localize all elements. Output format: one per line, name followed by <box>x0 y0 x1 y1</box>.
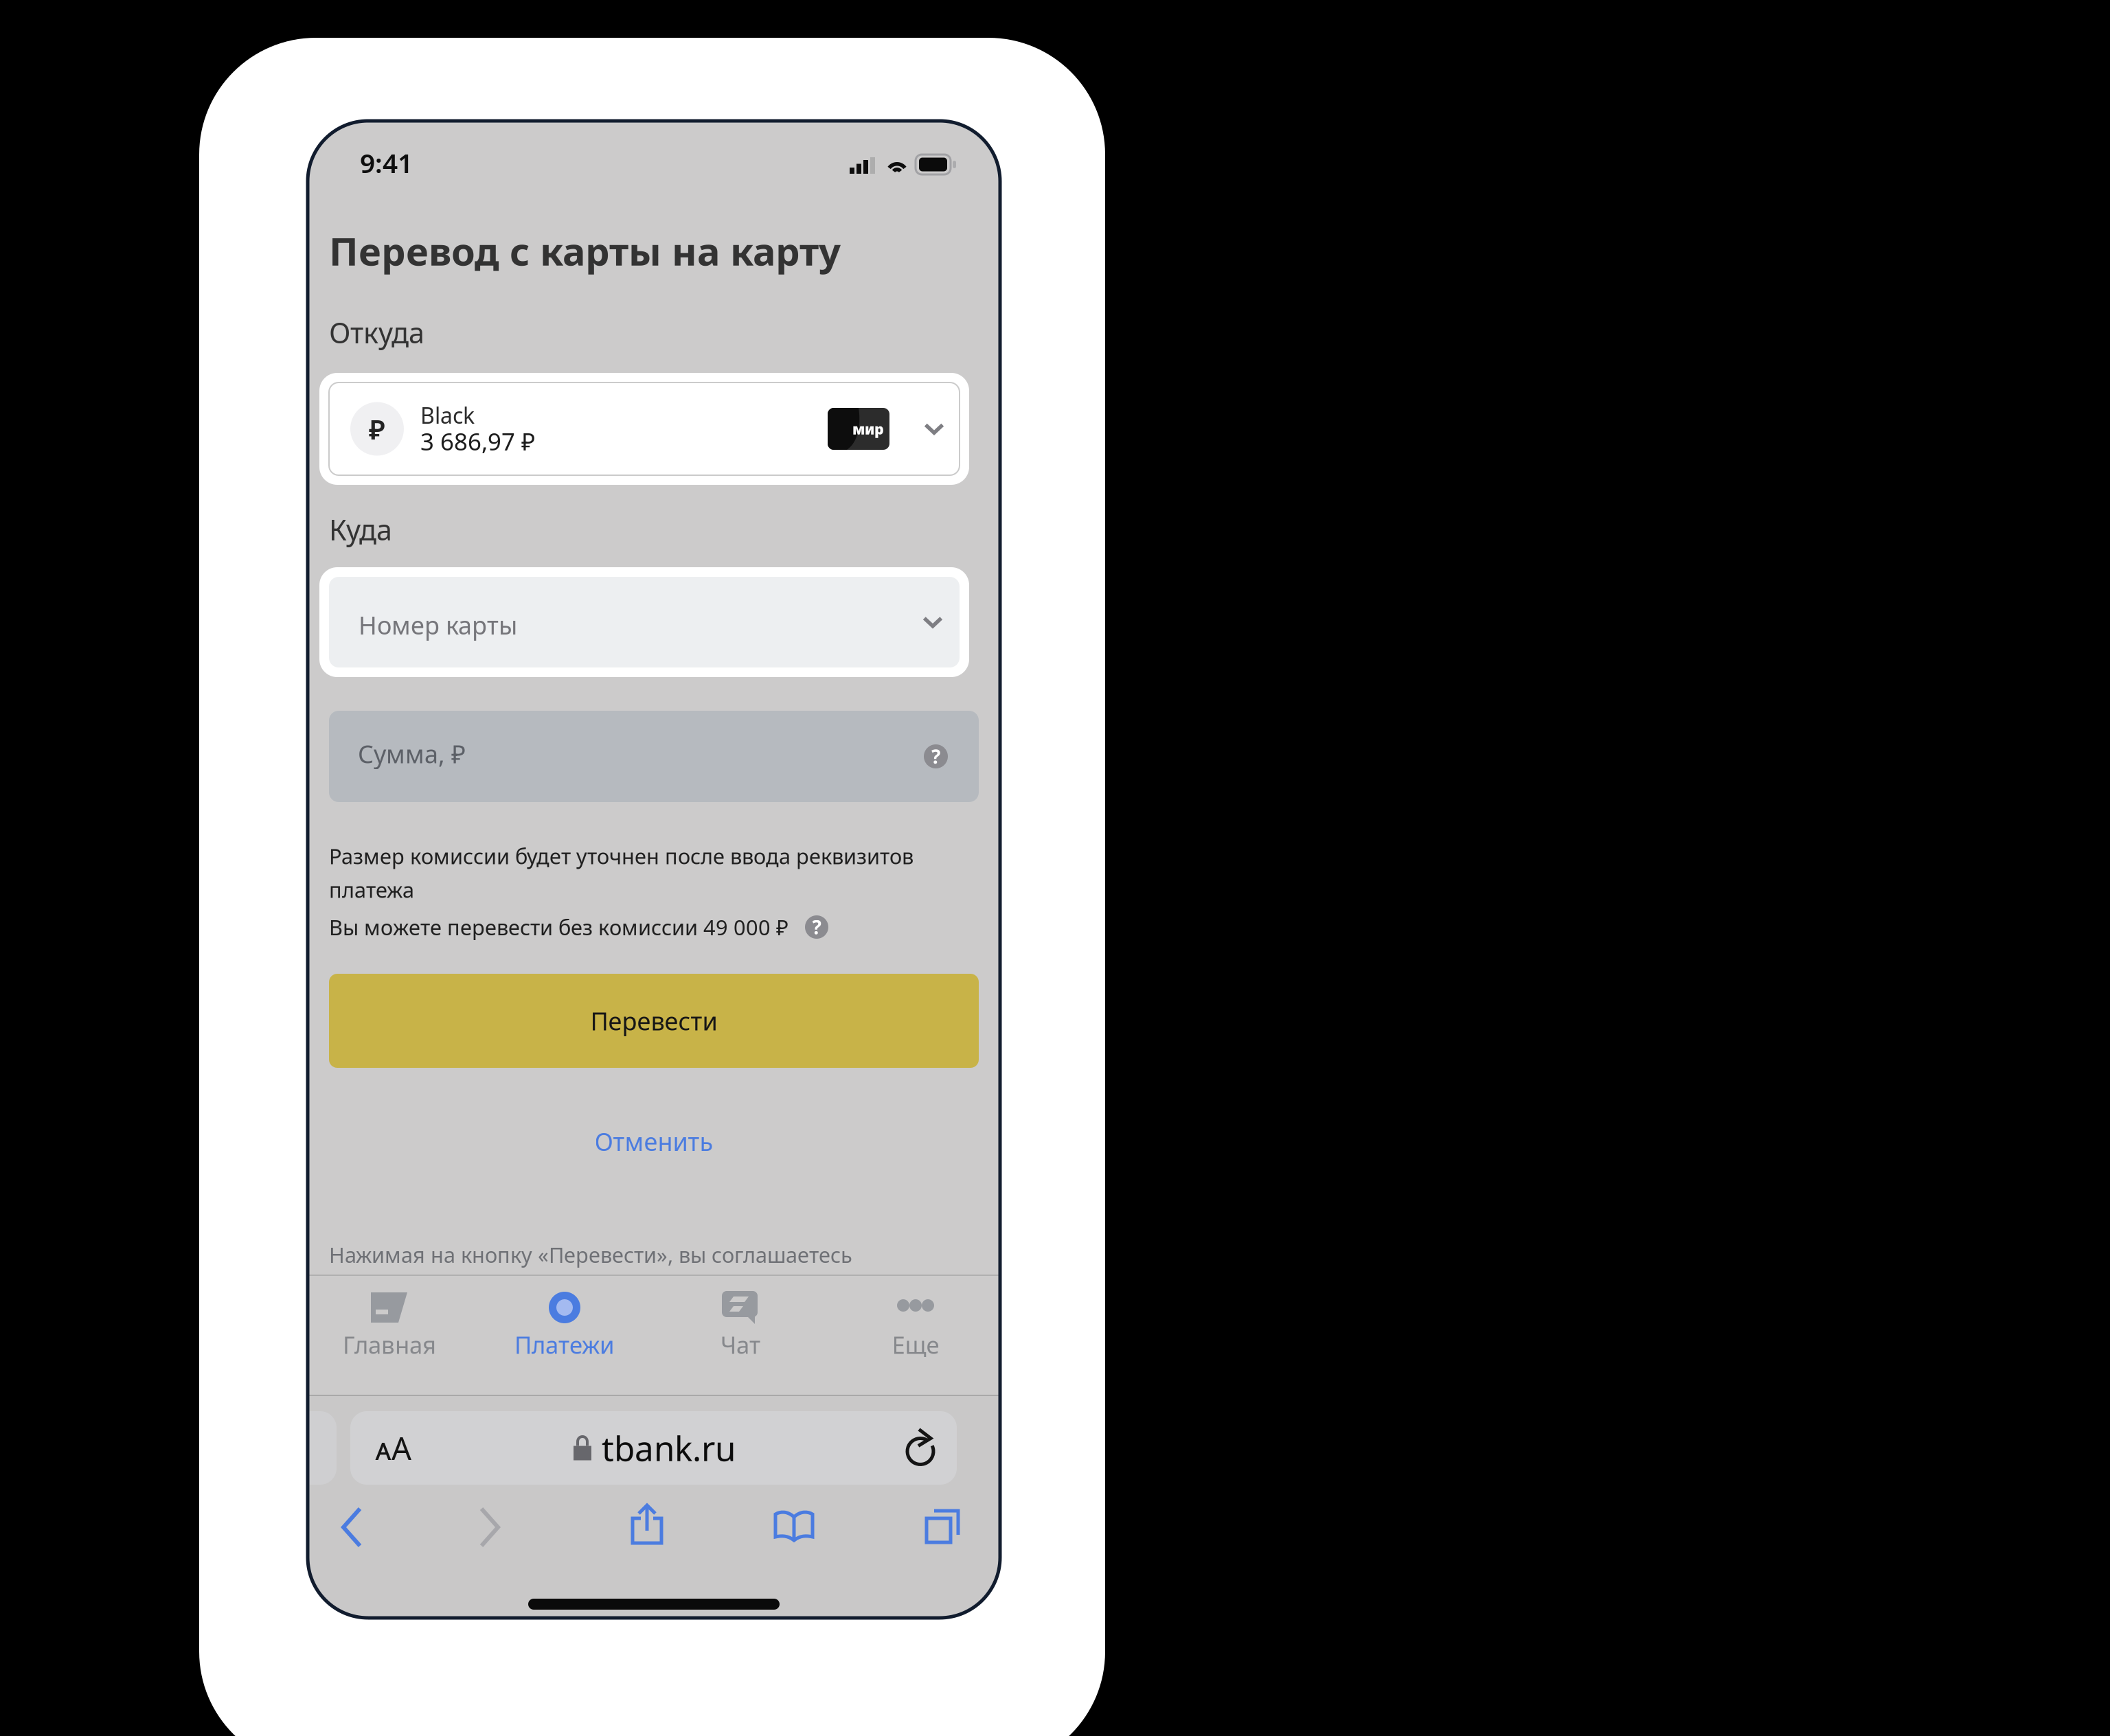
button[interactable]: Главная <box>314 1291 465 1357</box>
staticText: ? <box>812 914 821 940</box>
staticText: Куда <box>329 511 392 548</box>
button[interactable]: Forward <box>477 1506 502 1549</box>
button[interactable]: Back <box>339 1506 364 1549</box>
button[interactable]: Платежи <box>489 1291 640 1357</box>
staticText: tbank.ru <box>602 1425 736 1470</box>
button[interactable]: Еще <box>840 1291 991 1357</box>
staticText: Перевести <box>590 1004 717 1037</box>
staticText: ₽ <box>369 411 385 447</box>
staticText: Главная <box>343 1329 436 1360</box>
staticText: Нажимая на кнопку «Перевести», вы соглаш… <box>329 1241 852 1269</box>
button[interactable]: Отменить <box>329 1108 979 1174</box>
staticText: ? <box>931 744 940 769</box>
button[interactable]: Сумма, ₽ <box>329 711 979 802</box>
staticText: Black <box>420 401 475 430</box>
button[interactable]: ₽ <box>319 373 969 485</box>
button[interactable]: Address bar, tbank.ru <box>350 1411 957 1485</box>
staticText: ᴀA <box>375 1427 411 1469</box>
staticText: 3 686,97 ₽ <box>420 425 535 457</box>
button[interactable]: Перевести <box>329 974 979 1068</box>
staticText: Сумма, ₽ <box>358 737 466 770</box>
staticText: Вы можете перевести без комиссии 49 000 … <box>329 913 789 941</box>
button[interactable]: Bookmarks <box>773 1509 815 1544</box>
staticText: Еще <box>892 1329 939 1360</box>
staticText: Перевод с карты на карту <box>329 225 841 276</box>
button[interactable]: Share <box>629 1503 665 1546</box>
staticText: платежа <box>329 876 414 904</box>
staticText: мир <box>852 419 884 439</box>
staticText: Отменить <box>594 1125 713 1158</box>
staticText: 9:41 <box>360 145 413 180</box>
staticText: Откуда <box>329 314 424 351</box>
staticText: Чат <box>721 1329 760 1360</box>
button[interactable]: Номер карты <box>319 567 969 677</box>
staticText: Размер комиссии будет уточнен после ввод… <box>329 842 914 870</box>
staticText: Номер карты <box>359 608 517 641</box>
button[interactable]: Tabs <box>924 1508 961 1545</box>
button[interactable]: Чат <box>665 1291 816 1357</box>
staticText: Платежи <box>514 1329 615 1360</box>
